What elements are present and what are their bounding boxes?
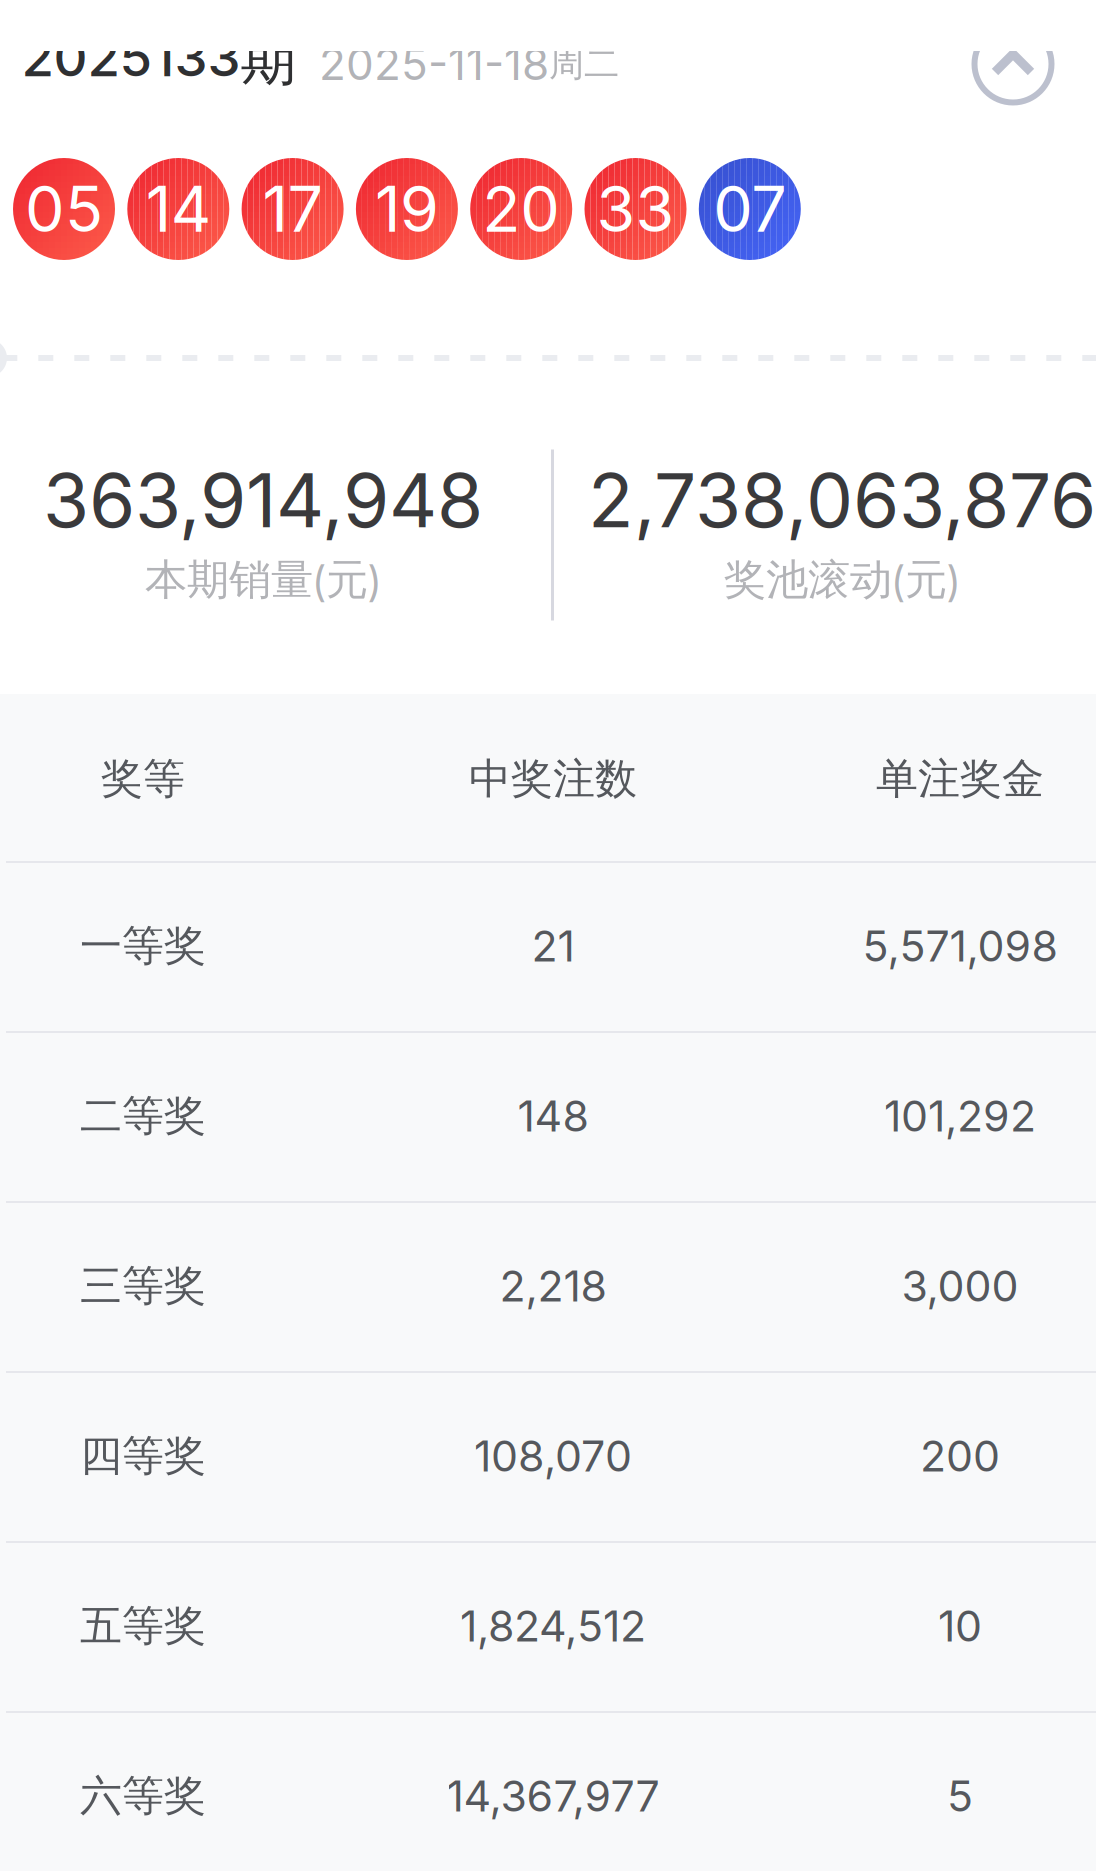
staticText: 1,824,512 — [460, 1600, 646, 1652]
staticText: 5 — [947, 1770, 973, 1822]
staticText: 中奖注数 — [469, 752, 637, 805]
staticText: 四等奖 — [80, 1429, 206, 1482]
staticText: 14 — [146, 171, 211, 247]
staticText: 5,571,098 — [862, 920, 1057, 972]
staticText: 六等奖 — [80, 1769, 206, 1822]
staticText: 奖池滚动(元) — [724, 553, 960, 607]
staticText: 21 — [531, 920, 574, 972]
staticText: 单注奖金 — [876, 752, 1044, 805]
staticText: 2,218 — [499, 1260, 606, 1312]
staticText: 19 — [375, 171, 439, 247]
staticText: 07 — [713, 171, 786, 247]
staticText: 101,292 — [884, 1090, 1036, 1142]
staticText: 本期销量(元) — [145, 553, 381, 607]
staticText: 2025-11-18 — [319, 37, 549, 91]
staticText: 33 — [596, 171, 674, 247]
staticText: 10 — [938, 1600, 982, 1652]
staticText: 148 — [517, 1090, 588, 1142]
staticText: 05 — [25, 171, 103, 247]
staticText: 20 — [482, 171, 560, 247]
staticText: 一等奖 — [80, 919, 206, 972]
staticText: 2025133 — [21, 25, 240, 89]
staticText: 二等奖 — [80, 1089, 206, 1142]
staticText: 3,000 — [901, 1260, 1018, 1312]
button[interactable]: 收起 — [965, 16, 1061, 112]
staticText: 五等奖 — [80, 1599, 206, 1652]
staticText: 周二 — [549, 42, 619, 86]
staticText: 期 — [240, 25, 296, 95]
staticText: 200 — [920, 1430, 1000, 1482]
staticText: 14,367,977 — [446, 1770, 659, 1822]
staticText: 363,914,948 — [43, 455, 483, 545]
staticText: 108,070 — [474, 1430, 632, 1482]
staticText: 2,738,063,876 — [588, 455, 1096, 545]
staticText: 17 — [263, 171, 323, 247]
staticText: 三等奖 — [80, 1259, 206, 1312]
staticText: 奖等 — [101, 752, 185, 805]
